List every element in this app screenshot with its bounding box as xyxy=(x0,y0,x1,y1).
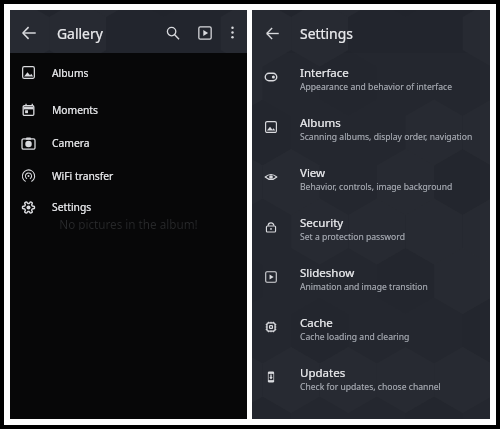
staticText: View xyxy=(300,165,326,181)
button[interactable] xyxy=(252,302,490,352)
button[interactable] xyxy=(252,52,490,102)
button[interactable] xyxy=(10,127,247,160)
button[interactable] xyxy=(252,202,490,252)
staticText: Set a protection password xyxy=(300,231,405,243)
staticText: Updates xyxy=(300,365,346,381)
button[interactable]: Back xyxy=(254,15,290,51)
staticText: Scanning albums, display order, navigati… xyxy=(300,131,473,143)
staticText: Security xyxy=(300,215,344,231)
staticText: Cache xyxy=(300,315,333,331)
button[interactable] xyxy=(10,56,247,89)
staticText: WiFi transfer xyxy=(52,169,114,183)
button[interactable] xyxy=(10,191,247,224)
staticText: Albums xyxy=(52,66,89,80)
staticText: Interface xyxy=(300,65,349,81)
button[interactable]: Back xyxy=(11,15,47,51)
staticText: Settings xyxy=(52,200,92,214)
button[interactable] xyxy=(10,94,247,127)
button[interactable] xyxy=(252,152,490,202)
staticText: Slideshow xyxy=(300,265,355,281)
staticText: No pictures in the album! xyxy=(59,216,198,230)
staticText: Camera xyxy=(52,136,90,150)
staticText: Behavior, controls, image background xyxy=(300,181,453,193)
staticText: Settings xyxy=(300,24,353,43)
staticText: Gallery xyxy=(57,24,103,43)
staticText: Moments xyxy=(52,103,99,117)
button[interactable] xyxy=(252,352,490,402)
button[interactable]: Search xyxy=(158,18,188,48)
staticText: Albums xyxy=(300,115,341,131)
staticText: Check for updates, choose channel xyxy=(300,381,441,393)
staticText: Appearance and behavior of interface xyxy=(300,81,453,93)
button[interactable] xyxy=(252,102,490,152)
button[interactable]: More options xyxy=(218,18,247,47)
staticText: Cache loading and clearing xyxy=(300,331,410,343)
button[interactable]: Slideshow xyxy=(190,18,220,48)
button[interactable] xyxy=(10,159,247,192)
staticText: Animation and image transition xyxy=(300,281,428,293)
button[interactable] xyxy=(252,252,490,302)
